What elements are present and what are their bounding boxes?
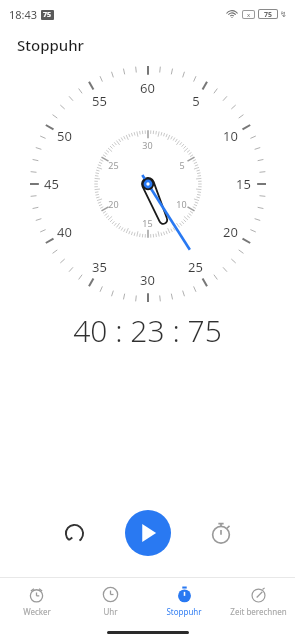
staticText: 45: [44, 175, 59, 193]
staticText: 30: [142, 139, 153, 151]
staticText: Stoppuhr: [17, 35, 84, 55]
staticText: 30: [140, 271, 155, 289]
staticText: 10: [176, 198, 187, 210]
staticText: 35: [92, 258, 107, 276]
staticText: 60: [140, 79, 155, 97]
button[interactable]: Stoppuhr: [147, 586, 221, 617]
button[interactable]: Start: [125, 510, 171, 556]
button[interactable]: Reset: [52, 511, 96, 555]
staticText: 5: [192, 92, 200, 110]
staticText: Wecker: [23, 606, 51, 617]
staticText: x: [247, 11, 251, 18]
staticText: 20: [223, 223, 238, 241]
staticText: 40 : 23 : 75: [73, 310, 222, 351]
staticText: 55: [92, 92, 107, 110]
staticText: Stoppuhr: [166, 606, 202, 617]
staticText: 20: [108, 198, 119, 210]
staticText: 40: [57, 223, 72, 241]
staticText: 15: [236, 175, 251, 193]
staticText: 18:43: [9, 7, 38, 22]
staticText: 15: [142, 217, 153, 229]
staticText: Uhr: [103, 606, 118, 617]
staticText: Zeit berechnen: [230, 606, 287, 617]
staticText: 25: [188, 258, 203, 276]
staticText: 75: [264, 10, 273, 18]
button[interactable]: Lap: [199, 511, 243, 555]
button[interactable]: Uhr: [73, 586, 147, 617]
staticText: 75: [43, 10, 52, 20]
staticText: 10: [223, 127, 238, 145]
button[interactable]: Wecker: [0, 586, 73, 617]
staticText: 50: [57, 127, 72, 145]
staticText: 25: [108, 159, 119, 171]
staticText: 5: [179, 159, 185, 171]
button[interactable]: Zeit berechnen: [221, 586, 295, 617]
staticText: ↯: [280, 10, 287, 19]
